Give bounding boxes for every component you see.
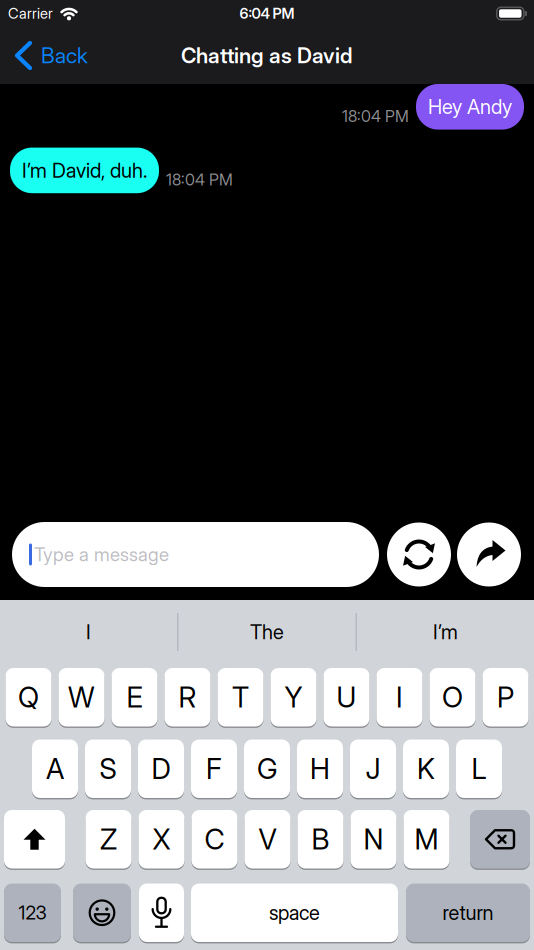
staticText: 6:04 PM [239, 5, 294, 22]
button[interactable]: Z [85, 810, 131, 868]
button[interactable] [4, 810, 65, 868]
staticText: M [414, 823, 438, 856]
staticText: O [442, 681, 463, 714]
button[interactable] [73, 883, 131, 942]
staticText: Chatting as David [181, 43, 353, 68]
button[interactable]: M [403, 810, 449, 868]
button[interactable]: space [191, 883, 398, 942]
button[interactable]: X [138, 810, 184, 868]
button[interactable]: Q [5, 668, 51, 726]
staticText: B [311, 823, 329, 856]
staticText: K [417, 752, 435, 785]
button[interactable]: Y [270, 668, 316, 726]
button[interactable]: H [297, 739, 343, 798]
staticText: J [365, 752, 380, 785]
staticText: Hey Andy [428, 95, 512, 119]
button[interactable]: The [178, 620, 356, 644]
staticText: F [206, 752, 222, 785]
button[interactable]: U [323, 668, 369, 726]
button[interactable]: Back [0, 43, 88, 68]
button[interactable]: C [191, 810, 237, 868]
button[interactable]: T [217, 668, 263, 726]
staticText: H [310, 752, 330, 785]
staticText: Z [100, 823, 117, 856]
button[interactable]: D [138, 739, 184, 798]
button[interactable]: L [456, 739, 502, 798]
button[interactable]: J [350, 739, 396, 798]
button[interactable]: F [191, 739, 237, 798]
staticText: G [257, 752, 277, 785]
staticText: S [99, 752, 116, 785]
staticText: Type a message [34, 543, 169, 565]
button[interactable]: N [350, 810, 396, 868]
button[interactable]: I [0, 620, 177, 644]
button[interactable]: return [406, 883, 530, 942]
staticText: I [86, 620, 91, 644]
staticText: E [126, 681, 142, 714]
staticText: space [269, 901, 320, 925]
button[interactable]: I [376, 668, 422, 726]
staticText: I’m [433, 620, 458, 644]
button[interactable]: P [482, 668, 528, 726]
button[interactable]: W [58, 668, 104, 726]
staticText: V [258, 823, 276, 856]
staticText: P [497, 681, 514, 714]
staticText: X [152, 823, 170, 856]
staticText: 123 [18, 902, 46, 924]
button[interactable]: B [297, 810, 343, 868]
staticText: N [363, 823, 383, 856]
staticText: U [336, 681, 356, 714]
button[interactable] [470, 810, 530, 868]
button[interactable]: Type a message [12, 522, 379, 587]
staticText: Q [18, 681, 39, 714]
button[interactable]: E [111, 668, 157, 726]
staticText: C [204, 823, 224, 856]
button[interactable]: 123 [4, 883, 61, 942]
staticText: W [68, 681, 95, 714]
staticText: Back [41, 43, 88, 68]
button[interactable]: K [403, 739, 449, 798]
button[interactable] [387, 522, 451, 586]
staticText: R [178, 681, 196, 714]
staticText: L [471, 752, 486, 785]
button[interactable]: V [244, 810, 290, 868]
button[interactable]: G [244, 739, 290, 798]
button[interactable] [139, 883, 184, 942]
button[interactable]: I’m [357, 620, 534, 644]
button[interactable] [457, 522, 521, 586]
staticText: T [232, 681, 249, 714]
staticText: 18:04 PM [342, 107, 409, 126]
staticText: Carrier [8, 5, 53, 22]
button[interactable]: R [164, 668, 210, 726]
staticText: The [250, 620, 284, 644]
button[interactable]: O [429, 668, 475, 726]
button[interactable]: A [32, 739, 78, 798]
staticText: I’m David, duh. [22, 159, 147, 182]
button[interactable]: S [85, 739, 131, 798]
staticText: D [151, 752, 170, 785]
staticText: A [46, 752, 64, 785]
staticText: Y [284, 681, 302, 714]
staticText: return [442, 901, 493, 925]
staticText: 18:04 PM [166, 170, 233, 189]
staticText: I [396, 681, 403, 714]
